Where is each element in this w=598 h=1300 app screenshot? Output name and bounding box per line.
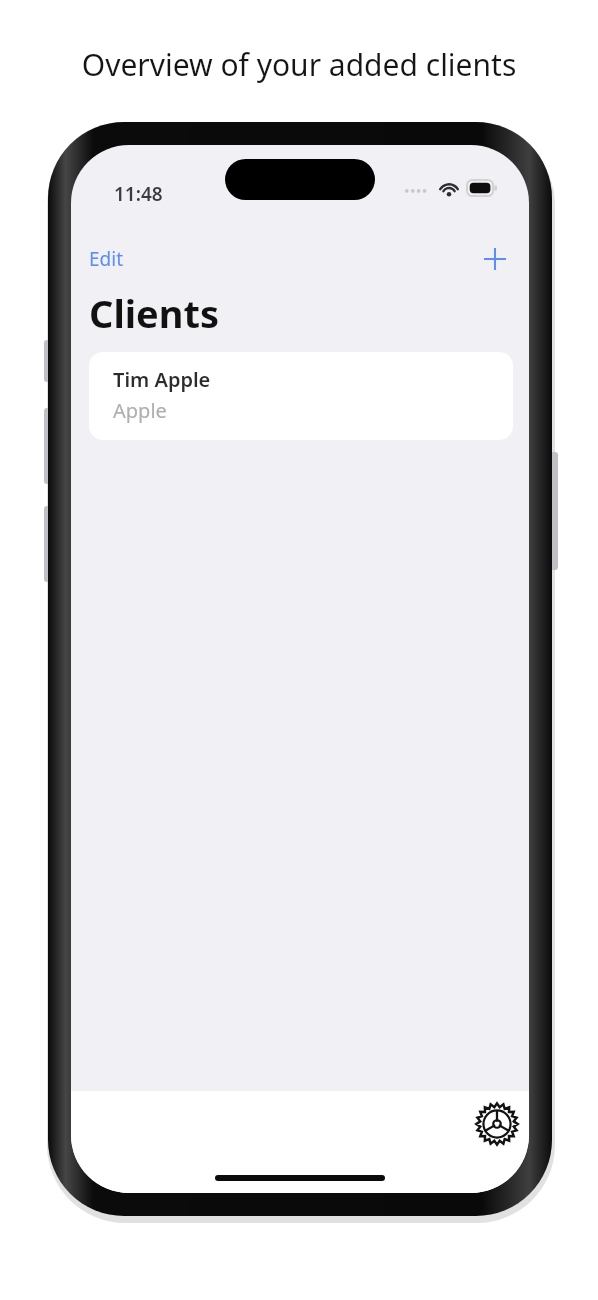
button[interactable]: Tim Apple [89, 352, 513, 440]
staticText: Clients [89, 287, 220, 339]
button[interactable]: Add client [475, 239, 515, 279]
staticText: Edit [89, 246, 124, 272]
staticText: Overview of your added clients [0, 44, 598, 85]
button[interactable]: Settings [470, 1097, 524, 1151]
staticText: 11:48 [114, 181, 163, 207]
staticText: Tim Apple [113, 366, 211, 393]
staticText: Apple [113, 397, 167, 424]
button[interactable]: Edit [85, 240, 128, 278]
